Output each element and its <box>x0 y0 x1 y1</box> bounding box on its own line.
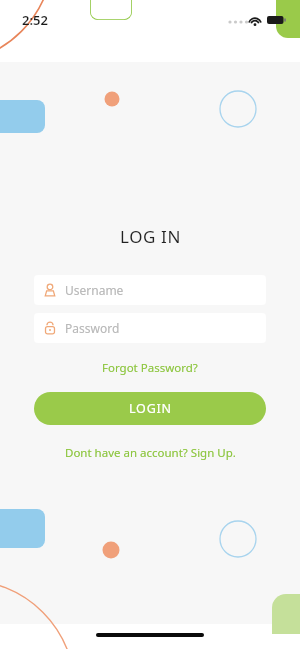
button[interactable]: Username <box>34 275 266 305</box>
staticText: LOGIN <box>129 400 172 417</box>
staticText: 2:52 <box>22 11 48 29</box>
staticText: Forgot Password? <box>102 360 198 376</box>
staticText: Dont have an account? Sign Up. <box>65 445 236 461</box>
staticText: Password <box>65 320 120 336</box>
button[interactable]: Forgot Password? <box>98 358 202 378</box>
staticText: LOG IN <box>120 225 181 248</box>
button[interactable]: Dont have an account? Sign Up. <box>61 443 240 463</box>
button[interactable]: LOGIN <box>34 392 266 425</box>
staticText: Username <box>65 282 124 298</box>
button[interactable]: Password <box>34 313 266 343</box>
